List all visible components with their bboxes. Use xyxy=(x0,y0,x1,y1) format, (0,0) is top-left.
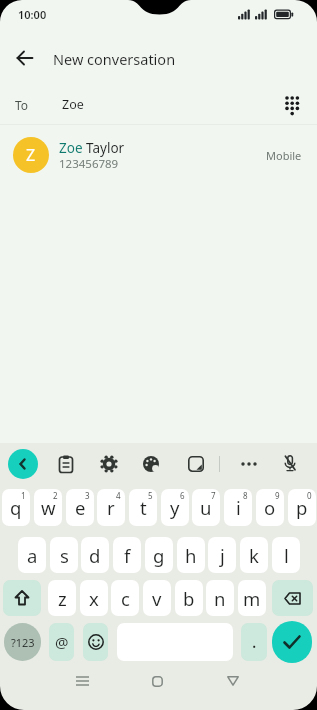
button[interactable]: v xyxy=(143,580,171,616)
button[interactable]: x xyxy=(80,580,108,616)
button[interactable]: n xyxy=(206,580,234,616)
button[interactable]: w xyxy=(34,489,62,526)
staticText: 0 xyxy=(307,490,312,501)
staticText: New conversation xyxy=(53,49,176,69)
button[interactable]: f xyxy=(113,537,141,573)
button[interactable]: y xyxy=(161,489,189,526)
staticText: f xyxy=(124,543,131,568)
button[interactable]: To xyxy=(0,84,317,124)
button[interactable] xyxy=(235,450,263,478)
button[interactable] xyxy=(276,450,304,478)
staticText: 10:00 xyxy=(18,7,47,22)
staticText: s xyxy=(60,543,69,568)
button[interactable] xyxy=(8,449,38,479)
staticText: g xyxy=(153,543,165,568)
button[interactable]: . xyxy=(241,623,267,661)
button[interactable]: u xyxy=(192,489,220,526)
staticText: 4 xyxy=(116,490,121,501)
staticText: t xyxy=(140,495,147,520)
staticText: Zoe Taylor xyxy=(59,139,125,157)
staticText: l xyxy=(284,543,289,568)
button[interactable]: @ xyxy=(49,623,74,661)
button[interactable]: a xyxy=(18,537,46,573)
button[interactable] xyxy=(95,450,123,478)
staticText: Zoe xyxy=(62,96,84,113)
staticText: w xyxy=(41,495,56,520)
staticText: u xyxy=(200,495,212,520)
staticText: b xyxy=(183,586,195,611)
staticText: z xyxy=(58,586,67,611)
staticText: h xyxy=(185,543,197,568)
staticText: m xyxy=(243,586,261,611)
staticText: @ xyxy=(55,632,69,652)
button[interactable]: k xyxy=(240,537,268,573)
button[interactable]: b xyxy=(175,580,203,616)
button[interactable]: t xyxy=(129,489,157,526)
staticText: c xyxy=(121,586,130,611)
button[interactable] xyxy=(182,450,210,478)
staticText: j xyxy=(220,543,225,568)
staticText: n xyxy=(214,586,226,611)
button[interactable]: ?123 xyxy=(4,623,41,661)
button[interactable]: s xyxy=(50,537,78,573)
button[interactable]: i xyxy=(224,489,252,526)
staticText: 123456789 xyxy=(59,156,119,172)
staticText: To xyxy=(15,97,29,113)
button[interactable] xyxy=(66,668,98,694)
button[interactable] xyxy=(83,623,108,661)
button[interactable]: r xyxy=(97,489,125,526)
button[interactable]: j xyxy=(208,537,236,573)
staticText: k xyxy=(249,543,259,568)
staticText: Mobile xyxy=(266,148,302,163)
staticText: v xyxy=(152,586,162,611)
staticText: o xyxy=(264,495,276,520)
staticText: e xyxy=(75,495,86,520)
button[interactable]: d xyxy=(81,537,109,573)
staticText: a xyxy=(27,543,38,568)
button[interactable] xyxy=(8,41,42,75)
button[interactable]: g xyxy=(145,537,173,573)
button[interactable] xyxy=(272,580,313,616)
staticText: p xyxy=(296,495,308,520)
staticText: 9 xyxy=(275,490,280,501)
button[interactable] xyxy=(217,668,249,694)
staticText: x xyxy=(89,586,99,611)
button[interactable]: h xyxy=(177,537,205,573)
staticText: 7 xyxy=(211,490,216,501)
staticText: . xyxy=(252,631,257,653)
staticText: 6 xyxy=(180,490,185,501)
button[interactable] xyxy=(3,580,41,616)
button[interactable]: z xyxy=(48,580,76,616)
button[interactable]: e xyxy=(66,489,94,526)
staticText: q xyxy=(10,495,22,520)
staticText: d xyxy=(89,543,101,568)
staticText: 5 xyxy=(148,490,153,501)
button[interactable]: l xyxy=(272,537,300,573)
staticText: 1 xyxy=(21,490,26,501)
staticText: 3 xyxy=(85,490,90,501)
staticText: y xyxy=(170,495,180,520)
staticText: ?123 xyxy=(11,635,35,650)
button[interactable]: c xyxy=(111,580,139,616)
button[interactable]: m xyxy=(238,580,266,616)
staticText: 2 xyxy=(53,490,58,501)
button[interactable] xyxy=(52,450,80,478)
button[interactable] xyxy=(272,621,312,663)
button[interactable]: Z xyxy=(0,128,317,186)
staticText: r xyxy=(107,495,115,520)
button[interactable]: p xyxy=(288,489,316,526)
button[interactable] xyxy=(141,668,173,694)
staticText: Z xyxy=(26,144,36,166)
staticText: 8 xyxy=(243,490,248,501)
staticText: i xyxy=(236,495,241,520)
button[interactable]: o xyxy=(256,489,284,526)
button[interactable] xyxy=(137,450,165,478)
button[interactable]: q xyxy=(2,489,30,526)
